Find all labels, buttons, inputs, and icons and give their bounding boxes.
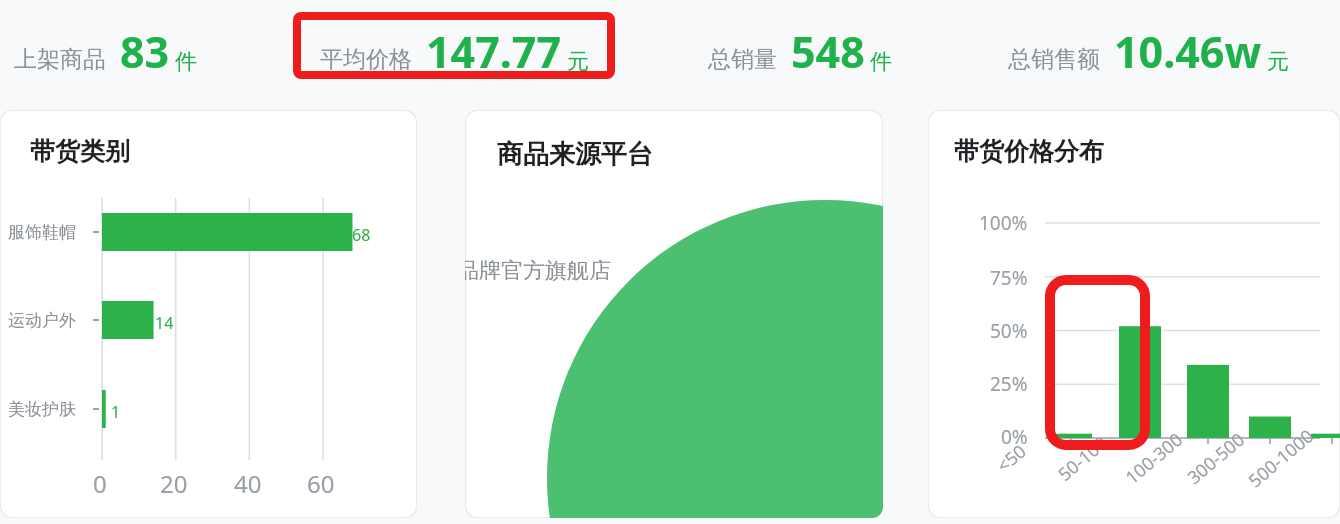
staticText: 50%: [990, 318, 1028, 344]
button[interactable]: 带货价格分布: [928, 110, 1340, 518]
staticText: 运动户外: [8, 310, 76, 331]
button[interactable]: 总销售额: [1008, 22, 1289, 81]
staticText: 元: [1267, 48, 1289, 76]
other: Highlighted average price: [293, 12, 615, 79]
staticText: 件: [870, 48, 892, 76]
staticText: 68: [352, 224, 371, 246]
staticText: 平均价格: [320, 45, 412, 74]
staticText: 300-500: [1182, 427, 1250, 490]
staticText: 0: [93, 467, 107, 500]
button[interactable]: 总销量: [708, 22, 892, 81]
staticText: 83: [120, 22, 170, 81]
staticText: 548: [791, 22, 865, 81]
staticText: 75%: [990, 265, 1028, 291]
staticText: 总销售额: [1008, 45, 1100, 74]
staticText: 0%: [1001, 424, 1028, 450]
staticText: 总销量: [708, 45, 777, 74]
staticText: 500-1000: [1243, 424, 1319, 493]
staticText: <50: [992, 439, 1031, 478]
staticText: 商品来源平台: [497, 138, 653, 171]
other: Highlighted 50-100 bar: [1045, 275, 1150, 450]
staticText: 带货价格分布: [954, 136, 1104, 167]
staticText: 20: [160, 467, 188, 500]
staticText: 100-300: [1120, 427, 1188, 490]
staticText: 品牌官方旗舰店: [465, 257, 611, 285]
staticText: 1: [111, 401, 121, 423]
staticText: 美妆护肤: [8, 399, 76, 420]
staticText: 25%: [990, 371, 1028, 397]
staticText: 服饰鞋帽: [8, 222, 76, 243]
staticText: 147.77: [426, 22, 562, 81]
staticText: 60: [307, 467, 335, 500]
button[interactable]: 平均价格: [320, 22, 589, 81]
staticText: 40: [234, 467, 262, 500]
staticText: 件: [175, 48, 197, 76]
button[interactable]: 上架商品: [14, 22, 197, 81]
staticText: 14: [155, 312, 174, 334]
staticText: 100%: [979, 210, 1028, 236]
staticText: 上架商品: [14, 45, 106, 74]
staticText: 带货类别: [30, 136, 130, 167]
staticText: 10.46w: [1114, 22, 1262, 81]
button[interactable]: 带货类别: [0, 110, 417, 518]
staticText: 元: [567, 48, 589, 76]
button[interactable]: 商品来源平台: [465, 110, 883, 518]
staticText: 50-100: [1053, 430, 1113, 487]
